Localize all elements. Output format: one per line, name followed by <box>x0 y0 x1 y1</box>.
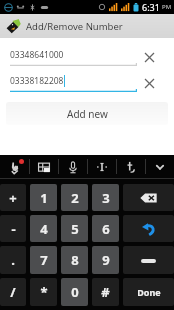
button[interactable]: 7 <box>30 246 57 274</box>
staticText: 6:31 <box>142 1 160 13</box>
button[interactable]: + <box>0 184 26 211</box>
staticText: 8 <box>71 251 79 269</box>
button[interactable]: Voice input <box>59 155 87 178</box>
button[interactable]: Clipboard <box>117 155 145 178</box>
button[interactable]: 4 <box>30 215 57 242</box>
button[interactable]: / <box>0 278 26 306</box>
staticText: PM <box>162 3 172 11</box>
staticText: 0 <box>71 283 79 301</box>
staticText: 5 <box>71 220 79 238</box>
button[interactable]: Hide keyboard <box>146 155 174 178</box>
button[interactable]: 5 <box>61 215 88 242</box>
button[interactable]: Done <box>123 278 174 306</box>
staticText: 03348641000 <box>10 49 64 61</box>
button[interactable]: Cursor control <box>88 155 116 178</box>
staticText: . <box>11 251 15 269</box>
button[interactable]: Clear <box>137 71 161 95</box>
staticText: 4 <box>40 220 48 238</box>
button[interactable]: 2 <box>61 184 88 211</box>
staticText: + <box>9 189 17 207</box>
button[interactable]: 0 <box>61 278 88 306</box>
staticText: Add/Remove Number <box>26 20 123 33</box>
staticText: 1 <box>40 189 48 207</box>
button[interactable]: 1 <box>30 184 57 211</box>
button[interactable]: 6 <box>92 215 119 242</box>
button[interactable]: # <box>92 278 119 306</box>
button[interactable]: 8 <box>61 246 88 274</box>
button[interactable]: Enter <box>123 215 174 242</box>
staticText: 2 <box>71 189 79 207</box>
button[interactable]: . <box>0 246 26 274</box>
staticText: 03338182208 <box>10 75 64 87</box>
staticText: - <box>11 220 16 238</box>
button[interactable]: 3 <box>92 184 119 211</box>
button[interactable]: * <box>30 278 57 306</box>
button[interactable]: Clear <box>137 45 161 69</box>
button[interactable]: Handwriting input <box>0 155 29 178</box>
button[interactable]: Backspace <box>123 184 174 211</box>
button[interactable]: Change language <box>30 155 58 178</box>
staticText: 7 <box>40 251 48 269</box>
button[interactable]: Add new <box>6 102 168 125</box>
button[interactable]: - <box>0 215 26 242</box>
button[interactable]: 9 <box>92 246 119 274</box>
button[interactable]: Space <box>123 246 174 274</box>
staticText: 6 <box>102 220 110 238</box>
staticText: * <box>40 283 48 301</box>
staticText: # <box>101 283 110 301</box>
staticText: Done <box>137 286 161 298</box>
staticText: / <box>10 283 16 301</box>
staticText: Add new <box>67 107 108 121</box>
staticText: 9 <box>102 251 110 269</box>
staticText: 3 <box>102 189 110 207</box>
